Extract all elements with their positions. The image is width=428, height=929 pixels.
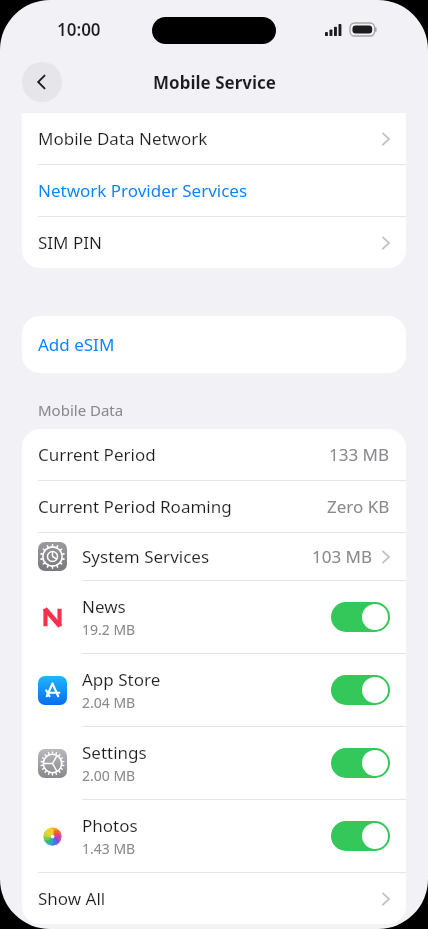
button[interactable]: App Store bbox=[22, 654, 406, 726]
staticText: App Store bbox=[82, 668, 161, 691]
staticText: System Services bbox=[82, 545, 312, 568]
button[interactable]: Show All bbox=[22, 873, 406, 924]
button[interactable]: Settings bbox=[22, 727, 406, 799]
staticText: Zero KB bbox=[327, 495, 390, 518]
staticText: 19.2 MB bbox=[82, 620, 136, 639]
staticText: Mobile Data Network bbox=[38, 127, 382, 150]
staticText: Current Period Roaming bbox=[38, 495, 327, 518]
staticText: 103 MB bbox=[312, 545, 373, 568]
staticText: Network Provider Services bbox=[38, 179, 390, 202]
staticText: SIM PIN bbox=[38, 231, 382, 254]
staticText: Photos bbox=[82, 814, 138, 837]
staticText: 10:00 bbox=[57, 18, 101, 41]
button[interactable]: SIM PIN bbox=[22, 217, 406, 268]
button[interactable]: Mobile Data Network bbox=[22, 113, 406, 164]
button[interactable]: Photos bbox=[22, 800, 406, 872]
staticText: 1.43 MB bbox=[82, 839, 136, 858]
button[interactable]: News bbox=[22, 581, 406, 653]
staticText: 2.04 MB bbox=[82, 693, 136, 712]
staticText: 133 MB bbox=[329, 443, 390, 466]
button[interactable]: Back bbox=[22, 62, 62, 102]
staticText: Settings bbox=[82, 741, 147, 764]
button[interactable]: Add eSIM bbox=[22, 316, 406, 373]
button[interactable]: System Services bbox=[22, 533, 406, 580]
staticText: Show All bbox=[38, 887, 382, 910]
button[interactable]: Toggle bbox=[331, 821, 390, 851]
button[interactable]: Current Period Roaming bbox=[22, 481, 406, 532]
staticText: Mobile Data bbox=[38, 400, 124, 420]
button[interactable]: Toggle bbox=[331, 602, 390, 632]
button[interactable]: Network Provider Services bbox=[22, 165, 406, 216]
staticText: 2.00 MB bbox=[82, 766, 136, 785]
button[interactable]: Toggle bbox=[331, 675, 390, 705]
button[interactable]: Current Period bbox=[22, 429, 406, 480]
staticText: Current Period bbox=[38, 443, 329, 466]
staticText: Add eSIM bbox=[38, 333, 115, 356]
staticText: Mobile Service bbox=[153, 71, 276, 94]
staticText: News bbox=[82, 595, 126, 618]
button[interactable]: Toggle bbox=[331, 748, 390, 778]
